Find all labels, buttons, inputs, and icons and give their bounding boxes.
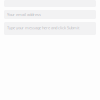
button[interactable]: Your email address xyxy=(4,10,96,19)
staticText: Your email address xyxy=(7,12,41,17)
staticText: Type your message here and click Submit xyxy=(7,25,79,30)
button[interactable]: Type your message here and click Submit xyxy=(4,22,96,35)
